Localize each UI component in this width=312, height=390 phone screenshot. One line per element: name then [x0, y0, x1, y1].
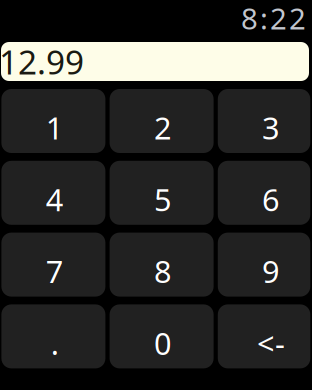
button[interactable]: 2 — [110, 89, 214, 153]
staticText: 6 — [262, 179, 280, 220]
button[interactable]: 4 — [1, 161, 105, 225]
staticText: 1 — [46, 107, 64, 148]
staticText: 12.99 — [0, 39, 84, 84]
staticText: . — [51, 323, 59, 363]
staticText: 9 — [262, 251, 280, 291]
button[interactable]: 1 — [1, 89, 105, 153]
button[interactable]: 7 — [1, 233, 105, 297]
button[interactable]: . — [1, 304, 105, 368]
button[interactable]: 5 — [110, 161, 214, 225]
staticText: 7 — [46, 251, 64, 291]
button[interactable]: 9 — [218, 233, 310, 297]
staticText: 0 — [154, 323, 172, 363]
staticText: 8:22 — [241, 0, 306, 37]
button[interactable]: 6 — [218, 161, 310, 225]
staticText: 5 — [154, 179, 172, 220]
staticText: 2 — [154, 107, 172, 148]
staticText: 4 — [46, 179, 64, 220]
button[interactable]: 3 — [218, 89, 310, 153]
button[interactable]: Delete — [218, 304, 310, 368]
staticText: 8 — [154, 251, 172, 291]
staticText: <- — [257, 323, 285, 363]
button[interactable]: 8 — [110, 233, 214, 297]
staticText: 3 — [262, 107, 280, 148]
button[interactable]: 0 — [110, 304, 214, 368]
